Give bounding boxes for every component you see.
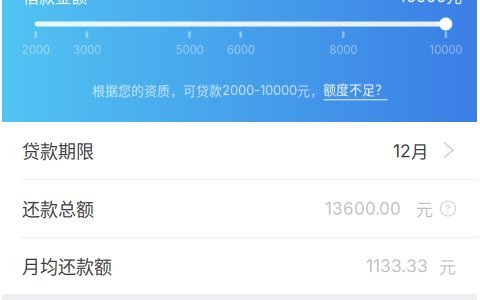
staticText: 1133.33 [366,255,428,277]
staticText: 根据您的资质，可贷款2000-10000元， [92,81,323,99]
staticText: 10000元 [399,0,462,8]
staticText: 12月 [393,138,429,163]
staticText: 元 [416,196,433,221]
staticText: 8000 [329,43,357,57]
button[interactable]: 额度不足？ [323,82,388,97]
staticText: ? [445,202,451,215]
staticText: 2000 [22,43,50,57]
staticText: 5000 [175,43,203,57]
staticText: 10000 [429,43,462,57]
staticText: 13600.00 [325,198,401,219]
button[interactable]: 贷款期限 [0,122,480,180]
staticText: 额度不足？ [323,80,388,98]
staticText: 贷款期限 [22,137,94,164]
button[interactable]: 月均还款额 [0,238,480,294]
staticText: 还款总额 [22,195,94,222]
staticText: 6000 [227,43,255,57]
staticText: 元 [439,254,456,278]
button[interactable]: 还款总额 [0,180,480,238]
staticText: 月均还款额 [22,253,112,279]
staticText: 借款金额 [23,0,87,8]
staticText: 3000 [73,43,101,57]
